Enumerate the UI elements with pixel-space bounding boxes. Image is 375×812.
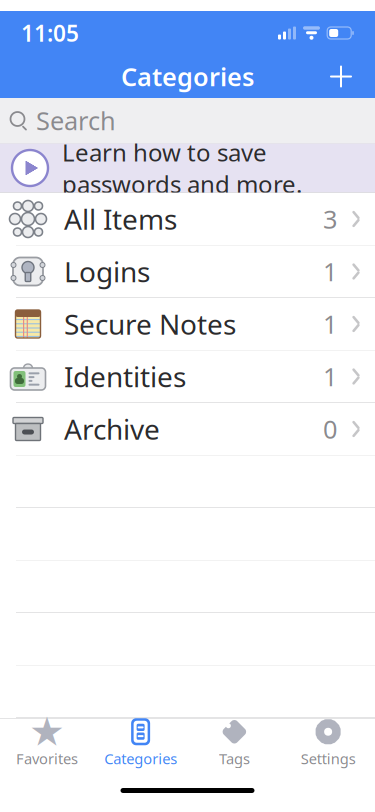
button[interactable]: ★ xyxy=(0,718,94,767)
button[interactable]: Settings xyxy=(281,718,375,767)
staticText: Favorites xyxy=(16,749,78,768)
button[interactable]: Logins xyxy=(0,245,375,298)
staticText: Learn how to save passwords and more. xyxy=(62,136,302,200)
staticText: Identities xyxy=(64,358,186,395)
staticText: 0 xyxy=(323,412,337,446)
staticText: 3 xyxy=(323,202,337,236)
button[interactable]: Learn how to save passwords and more. xyxy=(0,143,375,192)
staticText: 1 xyxy=(323,360,337,393)
staticText: Secure Notes xyxy=(64,305,236,343)
staticText: Search xyxy=(36,104,116,137)
staticText: Settings xyxy=(301,749,356,768)
button[interactable]: Archive xyxy=(0,403,375,455)
staticText: Categories xyxy=(104,749,177,768)
button[interactable]: All Items xyxy=(0,193,375,245)
staticText: 1 xyxy=(323,307,337,341)
button[interactable]: Secure Notes xyxy=(0,298,375,350)
staticText: Logins xyxy=(64,253,150,290)
button[interactable]: Identities xyxy=(0,350,375,403)
staticText: 11:05 xyxy=(21,18,79,48)
staticText: 1 xyxy=(323,255,337,288)
button[interactable]: Categories xyxy=(94,718,188,767)
button[interactable]: Search xyxy=(0,98,375,143)
button[interactable]: Add xyxy=(319,54,363,98)
staticText: Categories xyxy=(121,60,254,93)
staticText: ★ xyxy=(29,709,65,754)
staticText: Tags xyxy=(219,749,250,768)
button[interactable]: Tags xyxy=(187,718,281,767)
staticText: All Items xyxy=(64,200,177,238)
staticText: Archive xyxy=(64,410,160,448)
